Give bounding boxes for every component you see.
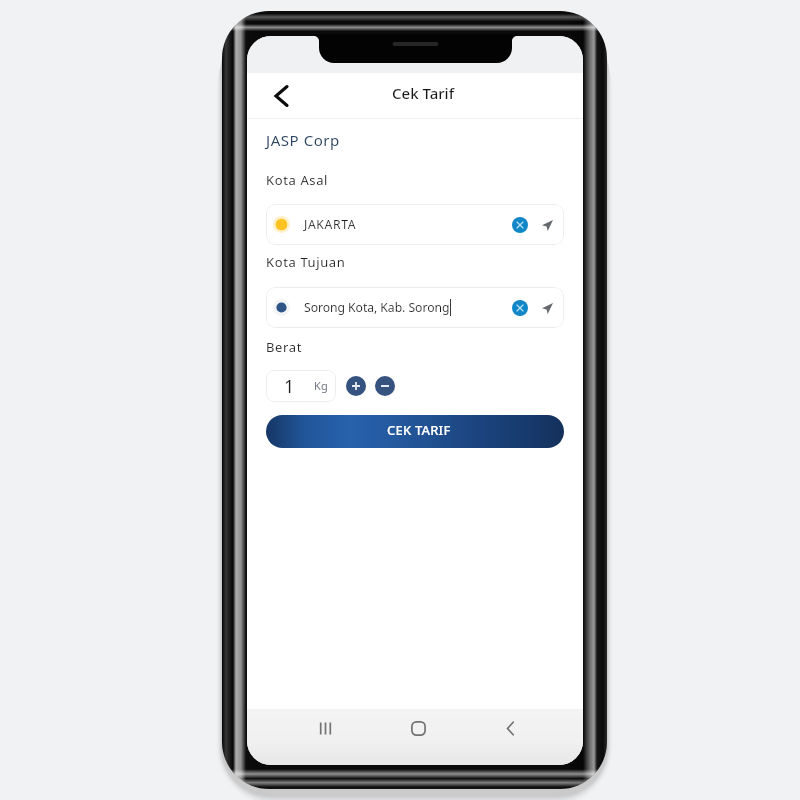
button[interactable]: Sorong Kota, Kab. Sorong bbox=[266, 287, 564, 328]
button[interactable]: 1 bbox=[266, 370, 336, 402]
staticText: Berat bbox=[266, 338, 302, 356]
staticText: JASP Corp bbox=[266, 130, 340, 150]
button[interactable]: Back bbox=[491, 709, 529, 747]
button[interactable]: Use current location bbox=[539, 300, 555, 316]
button[interactable]: Decrease weight bbox=[375, 376, 395, 396]
staticText: CEK TARIF bbox=[387, 421, 451, 439]
button[interactable]: Use current location bbox=[539, 217, 555, 233]
button[interactable]: Back bbox=[266, 81, 296, 111]
staticText: Kg bbox=[314, 378, 329, 393]
staticText: JAKARTA bbox=[304, 216, 357, 233]
staticText: Sorong Kota, Kab. Sorong bbox=[304, 299, 450, 316]
button[interactable]: Clear bbox=[512, 217, 528, 233]
button[interactable]: Increase weight bbox=[346, 376, 366, 396]
button[interactable]: CEK TARIF bbox=[266, 415, 564, 448]
staticText: 1 bbox=[284, 374, 295, 399]
button[interactable]: JAKARTA bbox=[266, 204, 564, 245]
button[interactable]: Recent apps bbox=[306, 709, 344, 747]
staticText: Kota Tujuan bbox=[266, 253, 346, 271]
button[interactable]: Clear bbox=[512, 300, 528, 316]
staticText: Cek Tarif bbox=[392, 83, 454, 103]
staticText: Kota Asal bbox=[266, 171, 329, 189]
button[interactable]: Home bbox=[399, 709, 437, 747]
